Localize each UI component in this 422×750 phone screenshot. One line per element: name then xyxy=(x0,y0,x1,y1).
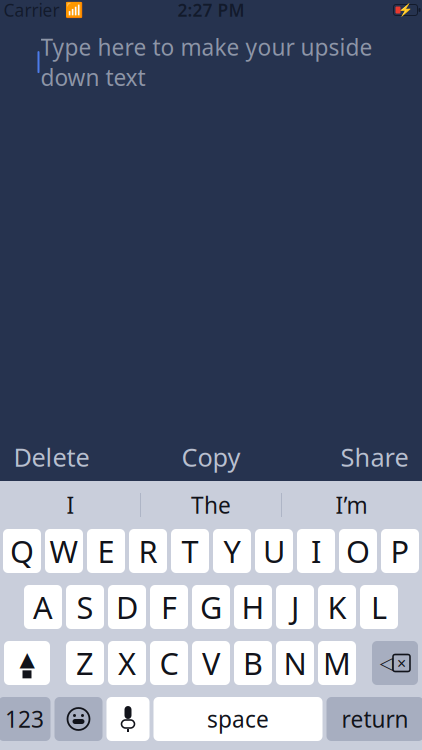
staticText: R xyxy=(138,531,157,571)
staticText: H xyxy=(241,587,264,627)
button[interactable]: X xyxy=(108,641,146,685)
button[interactable]: K xyxy=(318,585,356,629)
staticText: D xyxy=(116,587,138,627)
button[interactable]: J xyxy=(276,585,314,629)
staticText: L xyxy=(371,587,387,627)
staticText: 2:27 PM xyxy=(177,0,244,21)
staticText: W xyxy=(49,531,78,571)
staticText: The xyxy=(191,490,231,520)
button[interactable]: U xyxy=(255,529,293,573)
button[interactable]: return xyxy=(326,697,422,741)
staticText: ▲ xyxy=(19,648,34,670)
staticText: C xyxy=(159,643,178,683)
staticText: T xyxy=(181,531,198,571)
staticText: X xyxy=(118,643,136,683)
staticText: K xyxy=(327,587,346,627)
button[interactable]: Delete xyxy=(372,641,418,685)
staticText: V xyxy=(202,643,220,683)
button[interactable]: B xyxy=(234,641,272,685)
staticText: S xyxy=(76,587,93,627)
button[interactable]: V xyxy=(192,641,230,685)
button[interactable]: G xyxy=(192,585,230,629)
staticText: F xyxy=(161,587,177,627)
button[interactable]: H xyxy=(234,585,272,629)
button[interactable]: L xyxy=(360,585,398,629)
staticText: I xyxy=(311,531,321,571)
staticText: 📶 xyxy=(64,2,82,18)
button[interactable]: E xyxy=(87,529,125,573)
staticText: O xyxy=(346,531,370,571)
button[interactable]: Y xyxy=(213,529,251,573)
button[interactable]: Dictation xyxy=(106,697,149,741)
button[interactable]: 123 xyxy=(0,697,50,741)
button[interactable]: O xyxy=(339,529,377,573)
button[interactable]: N xyxy=(276,641,314,685)
staticText: Z xyxy=(76,643,94,683)
staticText: Type here to make your upside down text xyxy=(40,32,372,92)
button[interactable]: I xyxy=(297,529,335,573)
staticText: Share xyxy=(340,440,408,474)
button[interactable]: M xyxy=(318,641,356,685)
staticText: ⚡ xyxy=(398,3,413,17)
button[interactable]: I xyxy=(1,484,140,526)
button[interactable]: space xyxy=(153,697,322,741)
staticText: Y xyxy=(223,531,240,571)
button[interactable]: Shift xyxy=(4,641,50,685)
button[interactable]: A xyxy=(24,585,62,629)
staticText: 123 xyxy=(5,704,44,734)
button[interactable]: C xyxy=(150,641,188,685)
staticText: N xyxy=(283,643,306,683)
staticText: Carrier xyxy=(3,0,59,21)
button[interactable]: I’m xyxy=(282,484,421,526)
staticText: G xyxy=(200,587,222,627)
button[interactable]: The xyxy=(141,484,281,526)
button[interactable]: D xyxy=(108,585,146,629)
staticText: E xyxy=(97,531,114,571)
button[interactable]: P xyxy=(381,529,419,573)
button[interactable]: Delete xyxy=(0,435,135,479)
button[interactable]: F xyxy=(150,585,188,629)
staticText: × xyxy=(397,652,406,674)
button[interactable]: Share xyxy=(286,435,422,479)
button[interactable]: Q xyxy=(3,529,41,573)
staticText: space xyxy=(207,704,269,734)
staticText: Copy xyxy=(181,440,240,474)
staticText: Delete xyxy=(13,440,89,474)
button[interactable]: S xyxy=(66,585,104,629)
staticText: A xyxy=(33,587,53,627)
staticText: J xyxy=(291,587,299,627)
staticText: B xyxy=(243,643,263,683)
staticText: return xyxy=(341,704,408,734)
button[interactable]: Emoji xyxy=(54,697,102,741)
staticText: I’m xyxy=(335,490,367,520)
button[interactable]: Copy xyxy=(156,435,266,479)
staticText: I xyxy=(66,490,74,520)
button[interactable]: W xyxy=(45,529,83,573)
staticText: Q xyxy=(10,531,34,571)
staticText: P xyxy=(390,531,409,571)
staticText: ◁ xyxy=(380,653,393,673)
button[interactable]: Z xyxy=(66,641,104,685)
button[interactable]: R xyxy=(129,529,167,573)
button[interactable]: T xyxy=(171,529,209,573)
staticText: M xyxy=(323,643,351,683)
staticText: U xyxy=(263,531,285,571)
